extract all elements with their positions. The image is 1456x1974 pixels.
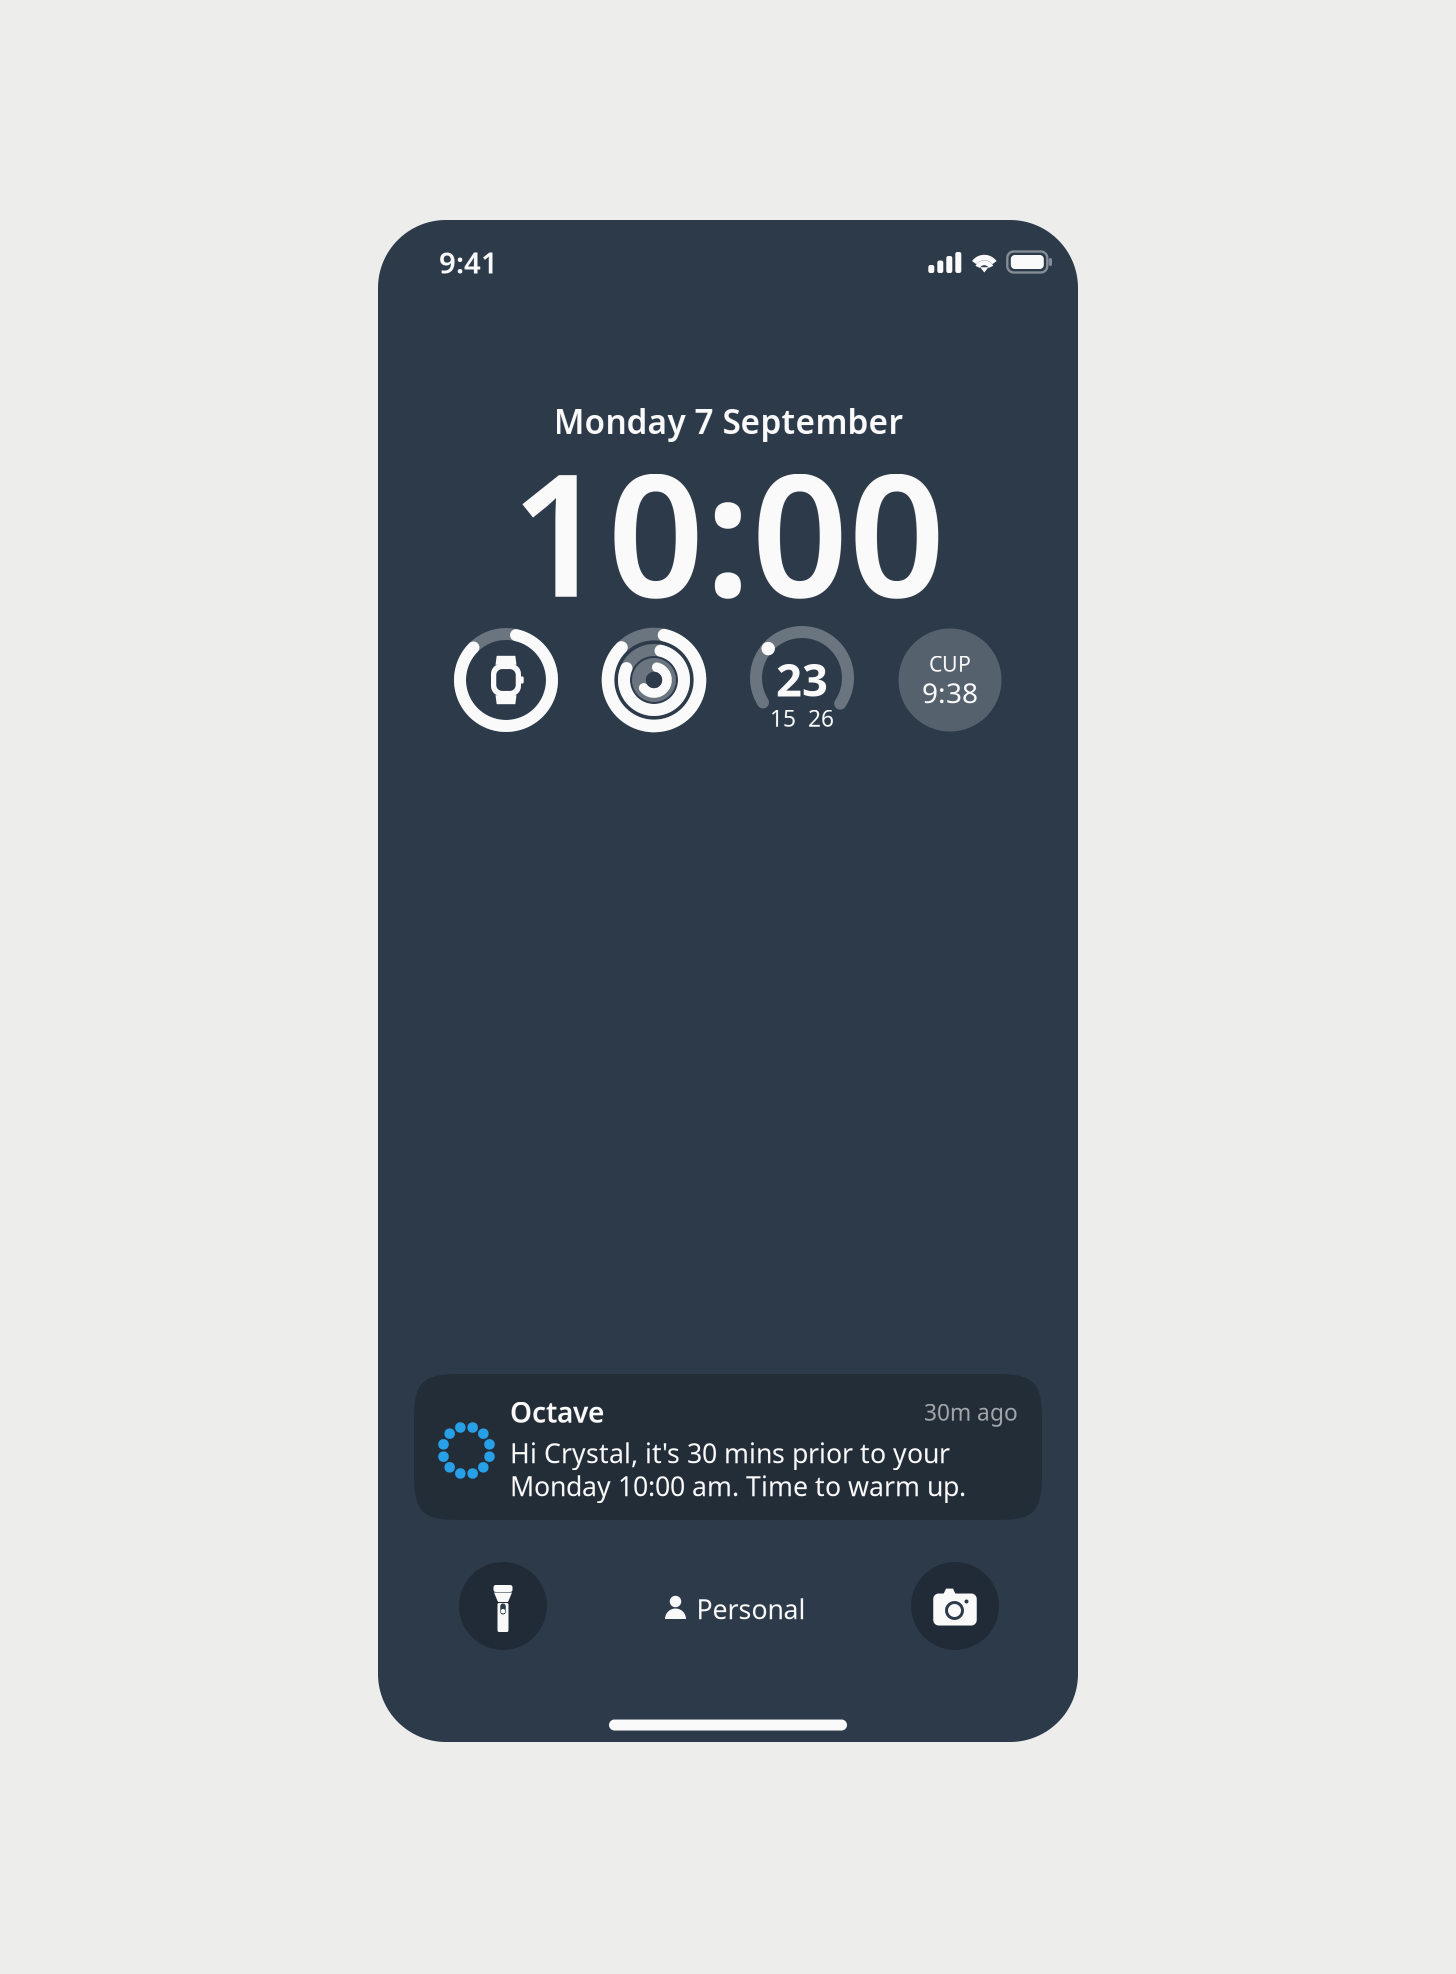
staticText: 30m ago bbox=[924, 1397, 1018, 1427]
button[interactable]: Personal bbox=[664, 1591, 805, 1627]
button[interactable]: Temperature, 23 degrees bbox=[749, 627, 855, 733]
staticText: Personal bbox=[696, 1591, 805, 1627]
staticText: CUP bbox=[929, 649, 971, 678]
button[interactable]: Flashlight bbox=[459, 1562, 547, 1650]
staticText: Hi Crystal, it's 30 mins prior to your bbox=[510, 1435, 950, 1471]
staticText: 15 26 bbox=[770, 703, 834, 733]
button[interactable]: Cupertino, 9:38 bbox=[897, 627, 1003, 733]
button[interactable]: Octave bbox=[414, 1374, 1042, 1520]
staticText: 23 bbox=[776, 649, 828, 709]
button[interactable]: Apple Watch battery bbox=[453, 627, 559, 733]
staticText: Monday 7 September bbox=[553, 399, 902, 443]
staticText: 9:41 bbox=[439, 242, 498, 281]
button[interactable]: Activity rings bbox=[601, 627, 707, 733]
staticText: 10:00 bbox=[510, 419, 945, 643]
staticText: Monday 10:00 am. Time to warm up. bbox=[510, 1468, 966, 1504]
staticText: 9:38 bbox=[922, 674, 978, 711]
button[interactable]: Camera bbox=[911, 1562, 999, 1650]
staticText: Octave bbox=[510, 1393, 604, 1431]
